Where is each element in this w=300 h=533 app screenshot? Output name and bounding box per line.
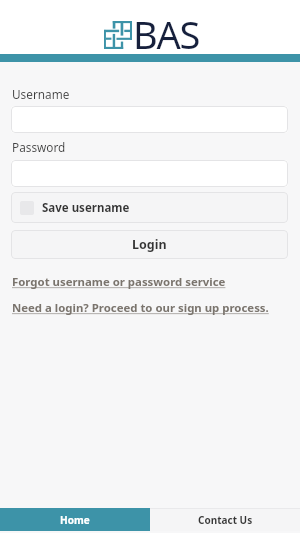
- staticText: Login: [132, 236, 167, 253]
- staticText: Username: [12, 86, 70, 102]
- button[interactable]: Forgot username or password service: [12, 274, 226, 290]
- staticText: Contact Us: [198, 513, 253, 527]
- button[interactable]: Need a login? Proceed to our sign up pro…: [12, 300, 269, 316]
- button[interactable]: Password input field: [11, 160, 288, 187]
- staticText: BAS: [133, 8, 199, 60]
- staticText: Forgot username or password service: [12, 274, 226, 290]
- button[interactable]: Login: [11, 230, 288, 259]
- staticText: Need a login? Proceed to our sign up pro…: [12, 300, 269, 316]
- button[interactable]: Home: [0, 508, 150, 531]
- button[interactable]: Username input field: [11, 106, 288, 133]
- staticText: Home: [60, 513, 90, 527]
- button[interactable]: Contact Us: [150, 508, 300, 531]
- staticText: Save username: [42, 200, 130, 216]
- button[interactable]: Save username: [11, 192, 288, 223]
- staticText: Password: [12, 139, 66, 155]
